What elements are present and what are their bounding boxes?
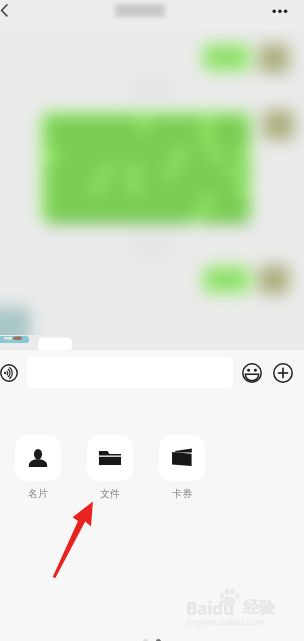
staticText: 文件	[87, 487, 133, 500]
staticText: 经验	[243, 598, 275, 618]
button[interactable]: 文件	[87, 435, 133, 500]
button[interactable]: Back	[0, 0, 22, 22]
button[interactable]: Voice input	[0, 356, 26, 390]
staticText: 卡券	[159, 487, 205, 500]
staticText: Baidu	[186, 597, 235, 620]
staticText: jingyan.baidu.com	[186, 615, 264, 627]
button[interactable]: Emoji	[240, 361, 264, 385]
staticText: 名片	[15, 487, 61, 500]
button[interactable]: 名片	[15, 435, 61, 500]
button[interactable]: 卡券	[159, 435, 205, 500]
button[interactable]: More options	[268, 0, 292, 24]
button[interactable]: More	[271, 361, 295, 385]
